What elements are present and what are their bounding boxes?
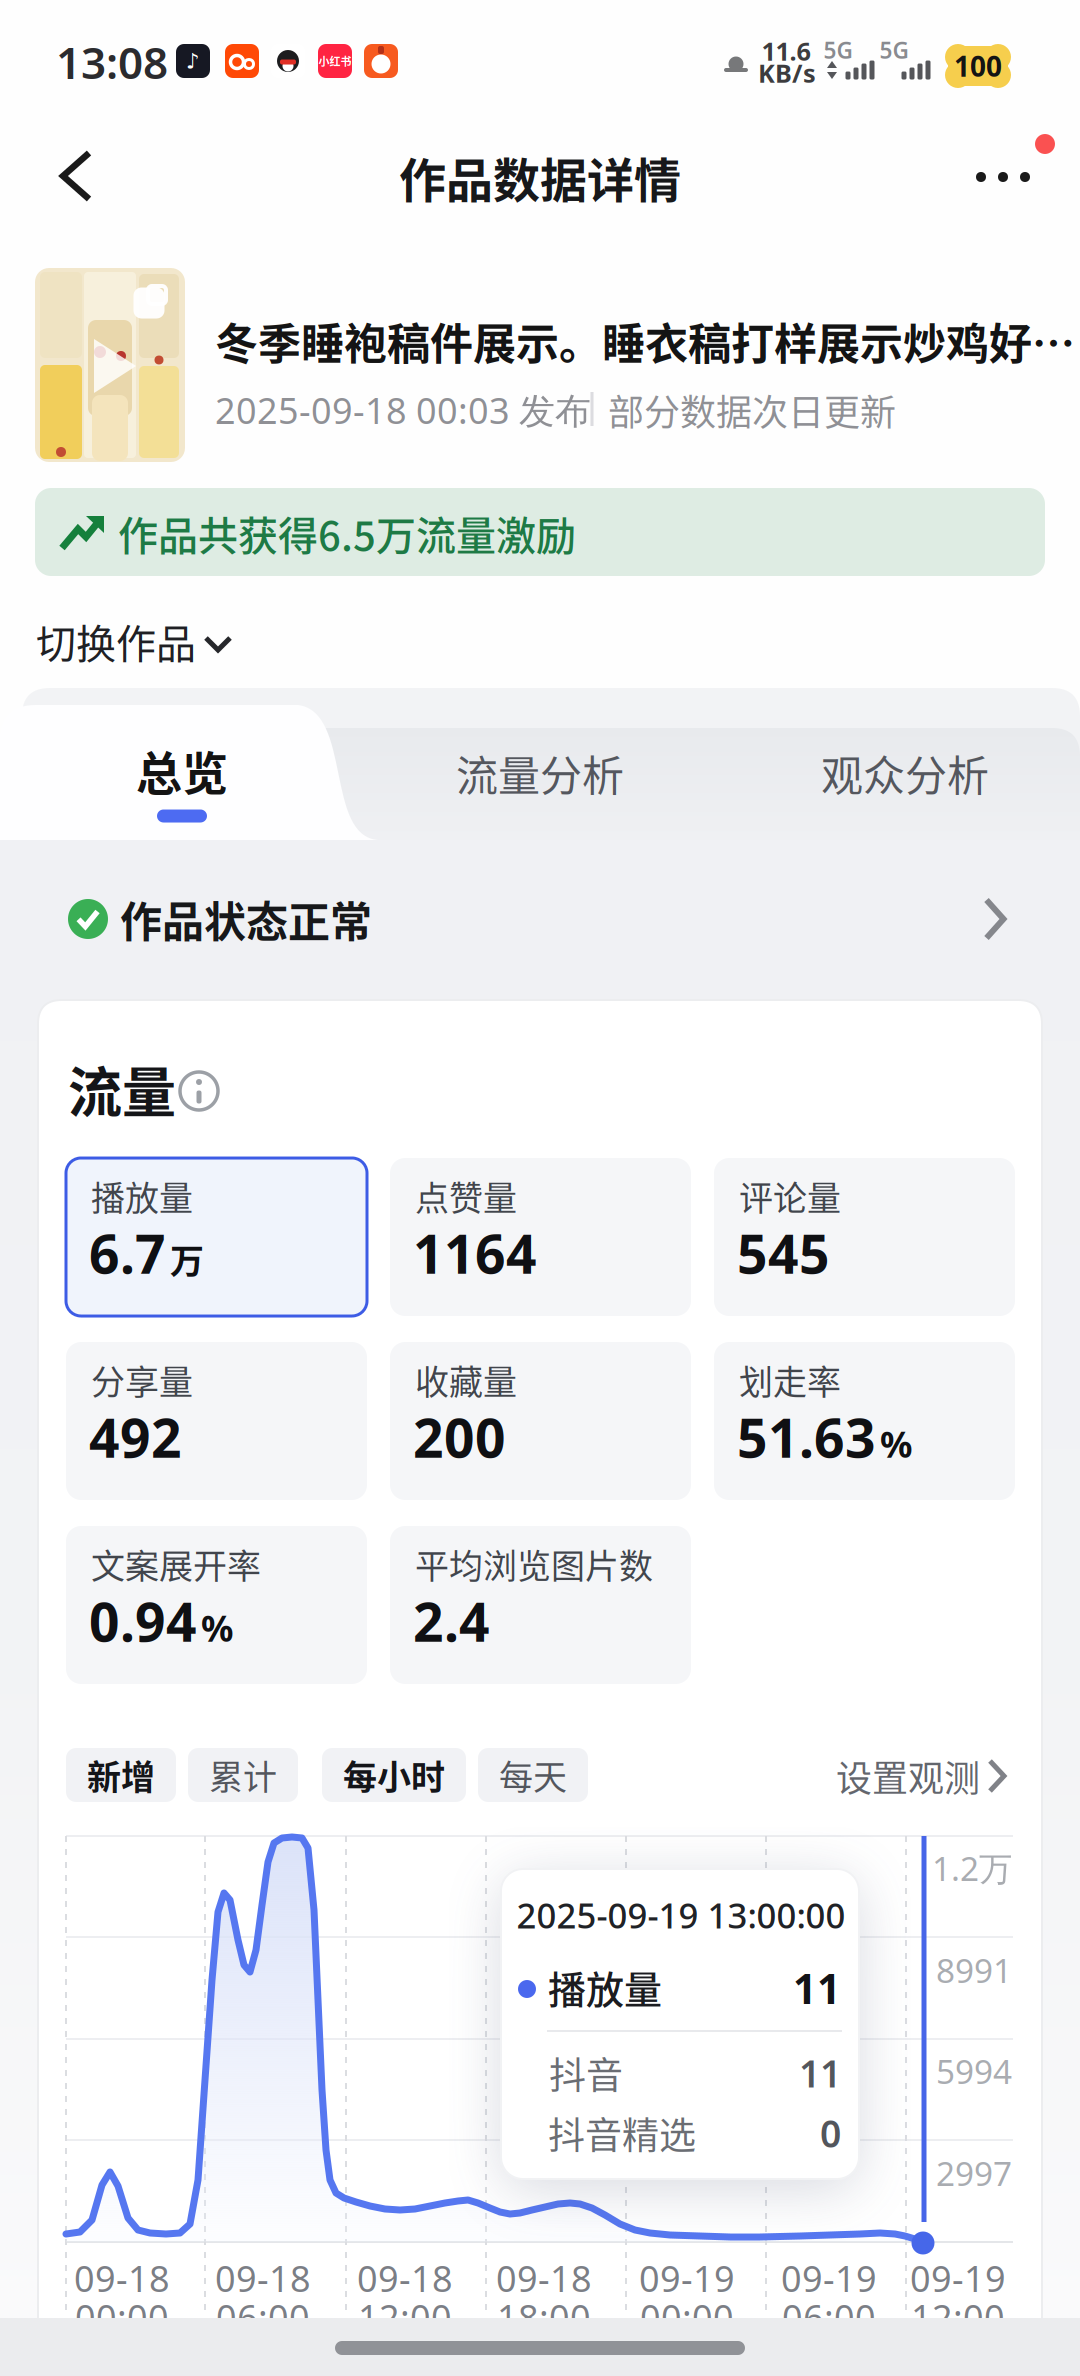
staticText: 切换作品	[36, 612, 196, 670]
staticText: 2025-09-18 00:03 发布	[215, 386, 591, 434]
staticText: 09-18	[357, 2254, 453, 2302]
button[interactable]: 流量分析	[456, 743, 624, 803]
button[interactable]: 平均浏览图片数	[390, 1526, 691, 1684]
staticText: 0.94	[89, 1586, 197, 1656]
staticText: 5994	[936, 2049, 1012, 2093]
staticText: 09-19	[910, 2254, 1006, 2302]
button[interactable]: 流量说明	[177, 1069, 221, 1113]
staticText: 每天	[499, 1750, 567, 1800]
staticText: 8991	[936, 1948, 1012, 1992]
staticText: 11	[799, 2048, 841, 2098]
button[interactable]: 播放量	[66, 1158, 367, 1316]
staticText: 11	[793, 1961, 841, 2015]
staticText: 545	[737, 1218, 830, 1288]
staticText: 100	[954, 47, 1002, 85]
staticText: 观众分析	[821, 743, 989, 803]
button[interactable]: 划走率	[714, 1342, 1015, 1500]
staticText: 流量分析	[456, 743, 624, 803]
button[interactable]: More	[976, 172, 1030, 182]
staticText: 1.2万	[932, 1846, 1012, 1890]
button[interactable]: 切换作品	[36, 612, 230, 670]
staticText: 09-18	[496, 2254, 592, 2302]
staticText: 12:00	[911, 2293, 1005, 2341]
staticText: 点赞量	[415, 1171, 517, 1221]
staticText: 11.6	[761, 34, 810, 68]
staticText: 51.63	[737, 1402, 876, 1472]
staticText: 200	[413, 1402, 506, 1472]
staticText: 抖音	[549, 2046, 623, 2100]
staticText: 0	[820, 2108, 841, 2158]
staticText: 06:00	[782, 2293, 876, 2341]
button[interactable]: 每天	[478, 1748, 588, 1802]
staticText: 09-18	[74, 2254, 170, 2302]
staticText: 6.7	[89, 1218, 166, 1288]
button[interactable]: 评论量	[714, 1158, 1015, 1316]
staticText: 播放量	[91, 1171, 193, 1221]
staticText: 00:00	[640, 2293, 734, 2341]
staticText: %	[201, 1604, 233, 1652]
staticText: ♪	[186, 49, 200, 73]
staticText: 收藏量	[415, 1355, 517, 1405]
staticText: 18:00	[497, 2293, 591, 2341]
staticText: 00:00	[75, 2293, 169, 2341]
staticText: 12:00	[358, 2293, 452, 2341]
staticText: %	[880, 1420, 912, 1468]
staticText: 万	[170, 1234, 204, 1283]
button[interactable]: 作品状态正常	[0, 0, 1080, 2376]
staticText: 文案展开率	[91, 1539, 261, 1589]
staticText: 设置观测	[836, 1750, 980, 1802]
staticText: 492	[89, 1402, 182, 1472]
button[interactable]: 总览	[136, 737, 228, 803]
staticText: 作品状态正常	[120, 889, 372, 949]
staticText: 13:08	[56, 33, 168, 91]
staticText: 冬季睡袍稿件展示。睡衣稿打样展示炒鸡好…	[215, 310, 1075, 372]
button[interactable]: 点赞量	[390, 1158, 691, 1316]
button[interactable]: 新增	[66, 1748, 176, 1802]
button[interactable]: 流量激励	[35, 488, 1045, 576]
staticText: 06:00	[216, 2293, 310, 2341]
staticText: 5G	[823, 35, 852, 65]
button[interactable]: 收藏量	[390, 1342, 691, 1500]
button[interactable]: 每小时	[322, 1748, 466, 1802]
staticText: 播放量	[548, 1959, 662, 2014]
staticText: 1164	[413, 1218, 537, 1288]
staticText: 小红书	[318, 53, 351, 69]
staticText: KB/s	[758, 56, 816, 90]
button[interactable]: 设置观测	[836, 1750, 1004, 1802]
button[interactable]: 累计	[188, 1748, 298, 1802]
staticText: 09-18	[215, 2254, 311, 2302]
staticText: 划走率	[739, 1355, 841, 1405]
button[interactable]: 作品封面	[35, 268, 185, 462]
staticText: 总览	[136, 737, 228, 803]
staticText: 新增	[87, 1750, 155, 1800]
staticText: 流量	[68, 1050, 176, 1128]
staticText: 部分数据次日更新	[608, 384, 896, 436]
staticText: 作品数据详情	[399, 143, 681, 211]
staticText: 抖音精选	[548, 2106, 696, 2160]
staticText: 作品共获得6.5万流量激励	[118, 504, 576, 562]
staticText: 评论量	[739, 1171, 841, 1221]
staticText: 09-19	[639, 2254, 735, 2302]
staticText: 2.4	[413, 1586, 490, 1656]
staticText: 平均浏览图片数	[415, 1539, 653, 1589]
staticText: 累计	[209, 1750, 277, 1800]
staticText: 5G	[879, 35, 908, 65]
button[interactable]: 分享量	[66, 1342, 367, 1500]
button[interactable]: 观众分析	[821, 743, 989, 803]
staticText: 分享量	[91, 1355, 193, 1405]
staticText: 每小时	[343, 1750, 445, 1800]
staticText: 2025-09-19 13:00:00	[516, 1892, 845, 1938]
staticText: 09-19	[781, 2254, 877, 2302]
staticText: 2997	[936, 2151, 1012, 2195]
button[interactable]: Back	[63, 153, 89, 199]
button[interactable]: 文案展开率	[66, 1526, 367, 1684]
